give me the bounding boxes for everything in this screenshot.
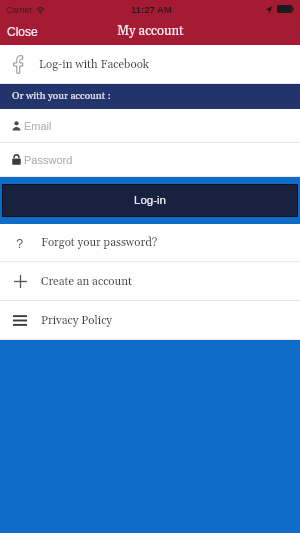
button[interactable]: Password: [0, 143, 300, 176]
staticText: My account: [117, 23, 184, 40]
staticText: Privacy Policy: [41, 313, 113, 328]
staticText: 11:27 AM: [131, 4, 172, 15]
button[interactable]: Log-in: [3, 185, 297, 216]
staticText: Close: [7, 25, 38, 38]
staticText: Forgot your password?: [41, 235, 158, 250]
button[interactable]: ?: [0, 224, 300, 261]
staticText: Create an account: [41, 274, 132, 289]
staticText: Log-in: [134, 194, 166, 207]
staticText: Or with your account :: [12, 90, 111, 103]
button[interactable]: Create an account: [0, 262, 300, 300]
staticText: ?: [16, 236, 24, 250]
staticText: Log-in with Facebook: [39, 57, 149, 72]
button[interactable]: Close: [0, 21, 48, 42]
button[interactable]: Email: [0, 109, 300, 142]
staticText: Carrier: [6, 5, 32, 14]
staticText: Email: [24, 120, 52, 132]
button[interactable]: Privacy Policy: [0, 301, 300, 339]
button[interactable]: Log-in with Facebook: [0, 45, 300, 83]
staticText: Password: [24, 154, 73, 166]
